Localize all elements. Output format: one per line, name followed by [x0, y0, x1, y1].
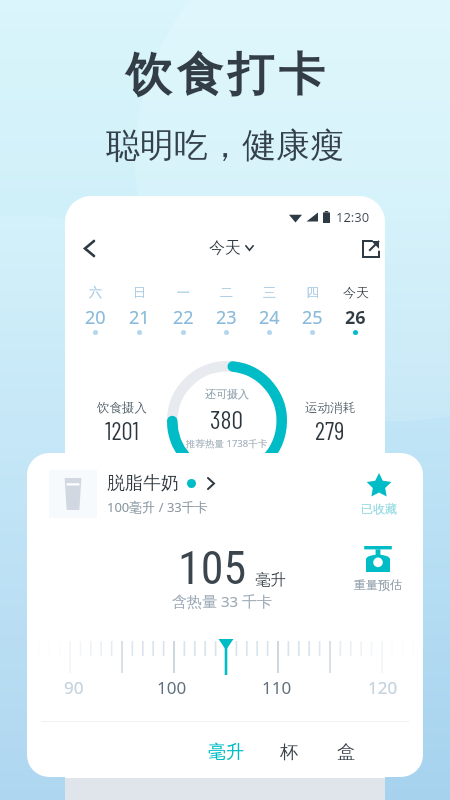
- button[interactable]: 日: [117, 284, 161, 335]
- staticText: 饮食打卡: [123, 46, 327, 104]
- staticText: 110: [262, 676, 292, 699]
- staticText: 毫升: [208, 741, 244, 764]
- staticText: 120: [368, 676, 398, 699]
- staticText: 22: [173, 305, 194, 330]
- staticText: 聪明吃，健康瘦: [106, 124, 344, 167]
- staticText: 推荐热量 1738千卡: [186, 437, 268, 450]
- button[interactable]: 一: [161, 284, 205, 335]
- button[interactable]: 四: [291, 284, 334, 335]
- staticText: 脱脂牛奶: [107, 472, 179, 495]
- staticText: 杯: [280, 741, 298, 764]
- staticText: 90: [64, 676, 84, 699]
- button[interactable]: 今天: [205, 234, 258, 262]
- staticText: 今天: [209, 238, 241, 258]
- staticText: 二: [220, 284, 233, 300]
- staticText: 六: [89, 284, 102, 300]
- staticText: 24: [259, 305, 280, 330]
- button[interactable]: 盒: [328, 734, 364, 771]
- staticText: 380: [210, 403, 244, 434]
- staticText: 四: [306, 284, 319, 300]
- staticText: 21: [129, 305, 150, 330]
- staticText: 100毫升 / 33千卡: [107, 498, 208, 516]
- staticText: 25: [302, 305, 323, 330]
- button[interactable]: 二: [205, 284, 248, 335]
- button[interactable]: 杯: [271, 734, 307, 771]
- staticText: 100: [157, 676, 187, 699]
- button[interactable]: 三: [248, 284, 291, 335]
- button[interactable]: 六: [73, 284, 117, 335]
- staticText: 26: [345, 305, 366, 330]
- staticText: 三: [263, 284, 276, 300]
- staticText: 今天: [343, 284, 369, 300]
- staticText: 1201: [105, 415, 139, 445]
- staticText: 12:30: [336, 208, 370, 226]
- button[interactable]: 重量预估: [345, 546, 411, 592]
- button[interactable]: 脱脂牛奶: [49, 470, 403, 518]
- button[interactable]: Open in new: [351, 229, 385, 269]
- button[interactable]: 已收藏: [355, 471, 403, 518]
- staticText: 20: [85, 305, 106, 330]
- button[interactable]: 今天: [334, 284, 377, 335]
- staticText: 含热量 33 千卡: [172, 591, 272, 611]
- staticText: 毫升: [255, 570, 286, 590]
- staticText: 日: [133, 284, 146, 300]
- staticText: 盒: [337, 741, 355, 764]
- button[interactable]: Back: [69, 228, 109, 268]
- staticText: 饮食摄入: [97, 400, 147, 416]
- staticText: 105: [178, 541, 247, 595]
- staticText: 重量预估: [354, 577, 402, 592]
- staticText: 23: [216, 305, 237, 330]
- button[interactable]: 毫升: [199, 734, 253, 771]
- staticText: 运动消耗: [305, 400, 355, 416]
- staticText: 279: [315, 415, 345, 445]
- staticText: 一: [177, 284, 190, 300]
- staticText: 还可摄入: [205, 387, 249, 401]
- staticText: 已收藏: [361, 501, 397, 516]
